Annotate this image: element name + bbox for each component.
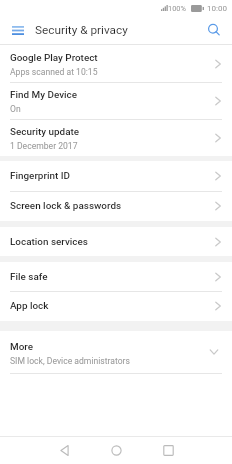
staticText: More bbox=[10, 341, 33, 353]
button[interactable]: Search bbox=[198, 16, 230, 44]
staticText: File safe bbox=[10, 271, 212, 283]
staticText: 1 December 2017 bbox=[10, 141, 78, 151]
staticText: 100% bbox=[168, 4, 186, 13]
staticText: Google Play Protect bbox=[10, 52, 98, 64]
button[interactable]: App lock bbox=[0, 291, 232, 321]
staticText: 10:00 bbox=[207, 4, 227, 13]
button[interactable]: Back bbox=[38, 437, 90, 464]
button[interactable]: Security update bbox=[0, 119, 232, 156]
button[interactable]: Recent apps bbox=[142, 437, 194, 464]
staticText: Security & privacy bbox=[35, 23, 128, 37]
button[interactable]: Screen lock & passwords bbox=[0, 191, 232, 221]
staticText: App lock bbox=[10, 300, 212, 312]
button[interactable]: Menu bbox=[0, 16, 35, 44]
staticText: Fingerprint ID bbox=[10, 170, 212, 182]
button[interactable]: Fingerprint ID bbox=[0, 161, 232, 191]
staticText: Location services bbox=[10, 236, 212, 248]
staticText: Find My Device bbox=[10, 89, 78, 101]
button[interactable]: Google Play Protect bbox=[0, 45, 232, 82]
staticText: Screen lock & passwords bbox=[10, 200, 212, 212]
button[interactable]: File safe bbox=[0, 262, 232, 291]
staticText: Security update bbox=[10, 126, 80, 138]
button[interactable]: More bbox=[0, 331, 232, 373]
staticText: SIM lock, Device administrators bbox=[10, 356, 130, 366]
button[interactable]: Home bbox=[90, 437, 142, 464]
button[interactable]: Location services bbox=[0, 227, 232, 256]
staticText: On bbox=[10, 104, 21, 114]
staticText: Apps scanned at 10:15 bbox=[10, 67, 98, 77]
button[interactable]: Find My Device bbox=[0, 82, 232, 119]
